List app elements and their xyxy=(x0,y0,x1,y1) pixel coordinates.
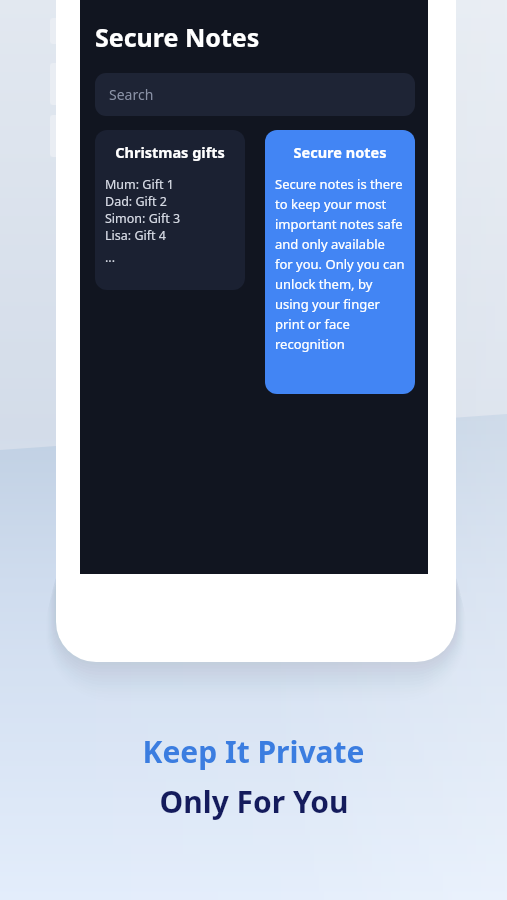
button[interactable]: Secure notes xyxy=(265,130,415,394)
staticText: Secure notes xyxy=(275,142,405,162)
staticText: Only For You xyxy=(159,781,349,822)
staticText: Secure notes is there to keep your most … xyxy=(275,175,405,353)
staticText: Search xyxy=(109,85,154,104)
staticText: Christmas gifts xyxy=(105,142,235,162)
staticText: Dad: Gift 2 xyxy=(105,193,167,210)
button[interactable]: Search xyxy=(95,73,415,116)
staticText: Secure Notes xyxy=(95,20,260,54)
staticText: Lisa: Gift 4 xyxy=(105,227,166,244)
staticText: Mum: Gift 1 xyxy=(105,176,174,193)
button[interactable]: Christmas gifts xyxy=(95,130,245,290)
staticText: Simon: Gift 3 xyxy=(105,210,181,227)
staticText: Keep It Private xyxy=(142,731,365,772)
staticText: ... xyxy=(105,249,116,266)
